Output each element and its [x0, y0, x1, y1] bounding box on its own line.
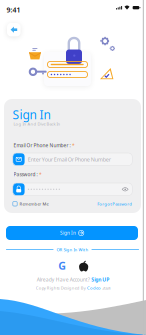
staticText: Sign UP	[91, 276, 109, 283]
staticText: Sign In	[12, 106, 50, 123]
staticText: OR Sign In With	[56, 247, 88, 252]
staticText: Already Have Account?	[37, 276, 90, 283]
button[interactable]: Sign In	[6, 226, 138, 240]
staticText: 2024	[102, 285, 110, 291]
button[interactable]: Already Have Account?	[37, 276, 109, 283]
staticText: Log In And Dive Back In	[13, 121, 60, 127]
staticText: Codeo	[87, 285, 101, 291]
staticText: 9:41	[6, 5, 20, 15]
staticText: Remember Me	[19, 201, 48, 207]
button[interactable]: Back	[7, 23, 21, 36]
staticText: Email Or Phone Number :	[13, 142, 71, 149]
button[interactable]: Forgot Password	[97, 201, 132, 207]
staticText: *	[72, 142, 75, 149]
staticText: Enter Your Email Or Phone Number	[28, 156, 111, 163]
button[interactable]: Remember Me	[13, 201, 48, 207]
staticText: *	[39, 171, 42, 178]
staticText: Copy Rights Designed By	[36, 285, 86, 291]
staticText: Password :	[13, 171, 38, 178]
staticText: G	[58, 258, 66, 273]
button[interactable]: Sign in with Apple	[78, 260, 89, 271]
button[interactable]: Sign in with Google	[56, 260, 68, 271]
staticText: Sign In	[60, 230, 76, 236]
staticText: Forgot Password	[97, 201, 132, 207]
